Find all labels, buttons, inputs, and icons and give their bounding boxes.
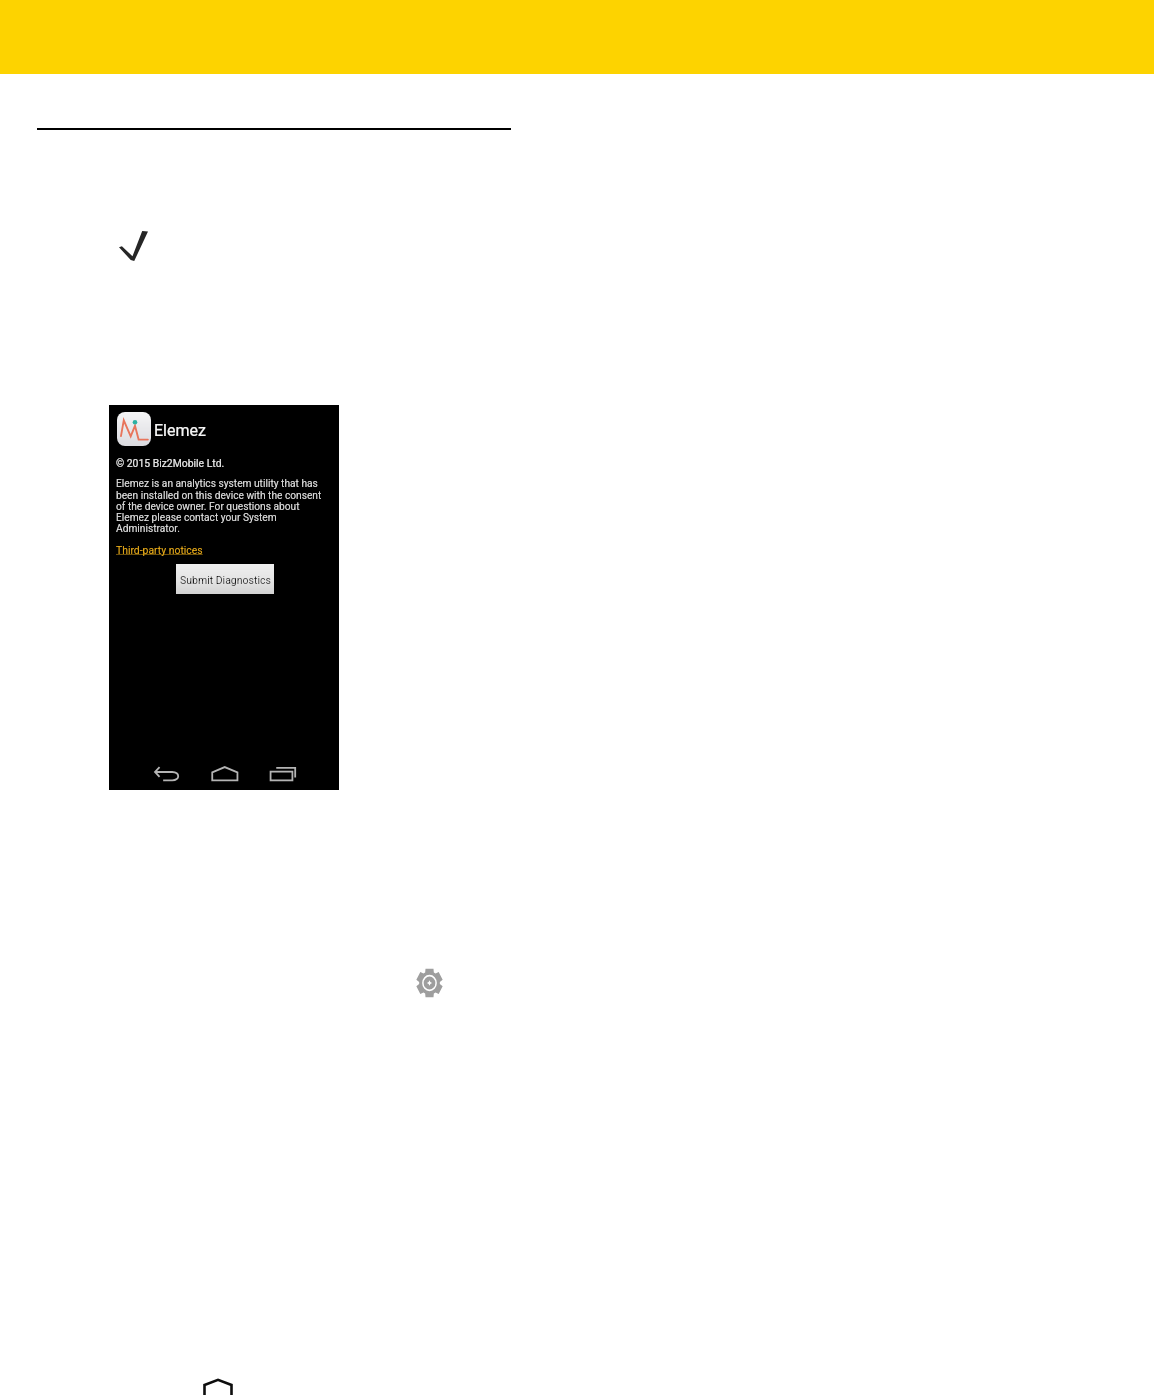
staticText: Elemez [154,421,206,440]
staticText: © 2015 Biz2Mobile Ltd. [116,457,225,469]
button[interactable]: Third-party notices [116,544,203,556]
button[interactable]: Settings [416,968,443,998]
button[interactable]: Home [203,1379,233,1395]
button[interactable]: Back [143,755,191,790]
button[interactable]: Home [200,755,248,790]
staticText: Elemez is an analytics system utility th… [116,478,324,534]
button[interactable]: Recent apps [258,755,306,790]
staticText: Submit Diagnostics [180,574,271,586]
staticText: Third-party notices [116,544,203,556]
button[interactable]: Submit Diagnostics [176,564,274,594]
